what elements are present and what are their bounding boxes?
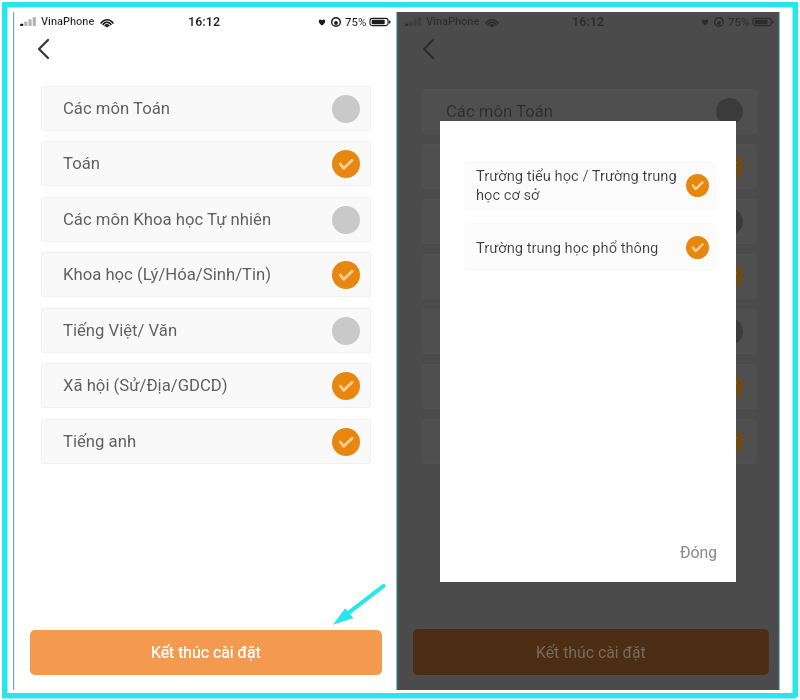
button[interactable]: Đóng	[674, 538, 724, 567]
staticText: Các môn Khoa học Tự nhiên	[63, 210, 332, 230]
staticText: Tiếng Việt/ Văn	[63, 321, 332, 341]
staticText: Toán	[446, 157, 716, 177]
staticText: Khoa học (Lý/Hóa/Sinh/Tin)	[63, 265, 332, 285]
button[interactable]: Xã hội (Sử/Địa/GDCD)	[41, 363, 371, 408]
button[interactable]: Trường tiểu học / Trường trung học cơ sở	[464, 161, 716, 210]
button[interactable]: Tiếng anh	[422, 419, 757, 464]
button[interactable]: Tiếng anh	[41, 419, 371, 464]
button[interactable]: Xã hội (Sử/Địa/GDCD)	[422, 364, 757, 409]
staticText: VinaPhone	[41, 15, 95, 28]
staticText: Kết thúc cài đặt	[151, 643, 261, 662]
staticText: Xã hội (Sử/Địa/GDCD)	[63, 376, 332, 396]
button[interactable]: Kết thúc cài đặt	[413, 629, 769, 675]
button[interactable]: Các môn Toán	[41, 86, 371, 131]
staticText: Tiếng anh	[63, 432, 332, 452]
staticText: VinaPhone	[426, 15, 480, 28]
button[interactable]: Khoa học (Lý/Hóa/Sinh/Tin)	[422, 254, 757, 299]
staticText: 16:12	[572, 14, 605, 29]
button[interactable]: Tiếng Việt/ Văn	[422, 309, 757, 354]
button[interactable]: Các môn Toán	[422, 89, 757, 134]
staticText: Các môn Toán	[63, 99, 332, 119]
staticText: Toán	[63, 154, 332, 174]
staticText: Trường tiểu học / Trường trung học cơ sở	[476, 167, 681, 204]
button[interactable]: Toán	[422, 144, 757, 189]
staticText: Kết thúc cài đặt	[536, 643, 646, 662]
staticText: Các môn Toán	[446, 102, 716, 122]
staticText: 75%	[728, 15, 750, 28]
staticText: Trường trung học phổ thông	[476, 239, 681, 256]
button[interactable]: Các môn Khoa học Tự nhiên	[422, 199, 757, 244]
button[interactable]: Các môn Khoa học Tự nhiên	[41, 197, 371, 242]
button[interactable]: Toán	[41, 141, 371, 186]
button[interactable]: Tiếng Việt/ Văn	[41, 308, 371, 353]
staticText: Đóng	[680, 543, 718, 562]
button[interactable]: Trường trung học phổ thông	[464, 223, 716, 271]
staticText: 16:12	[188, 14, 221, 29]
button[interactable]: Back	[411, 32, 445, 66]
button[interactable]: Khoa học (Lý/Hóa/Sinh/Tin)	[41, 252, 371, 297]
button[interactable]: Back	[26, 32, 60, 66]
button[interactable]: Kết thúc cài đặt	[30, 630, 382, 675]
staticText: 75%	[345, 15, 367, 28]
